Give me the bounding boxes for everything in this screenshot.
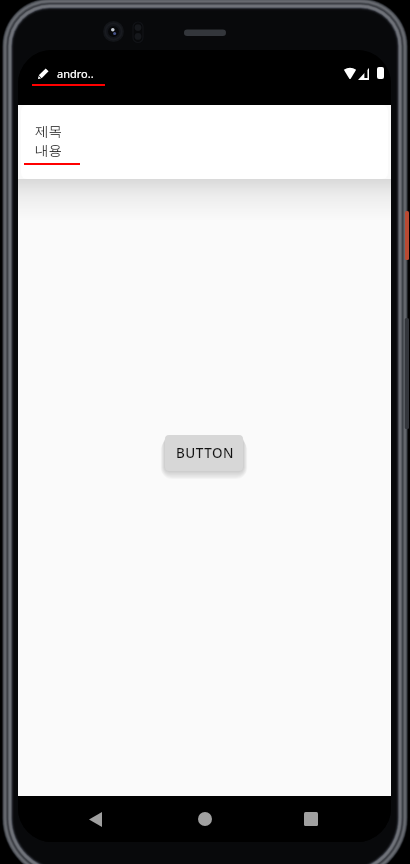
button[interactable]: Recents (287, 796, 334, 842)
staticText: 제목 (35, 123, 62, 140)
button[interactable]: Home (181, 796, 228, 842)
button[interactable]: Back (72, 796, 119, 842)
staticText: BUTTON (176, 444, 235, 462)
staticText: 내용 (35, 142, 62, 159)
other: Edit (38, 68, 49, 79)
button[interactable]: BUTTON (165, 435, 243, 471)
staticText: andro.. (57, 66, 94, 81)
button[interactable]: 제목 (21, 105, 388, 179)
button[interactable]: Edit (38, 66, 94, 81)
